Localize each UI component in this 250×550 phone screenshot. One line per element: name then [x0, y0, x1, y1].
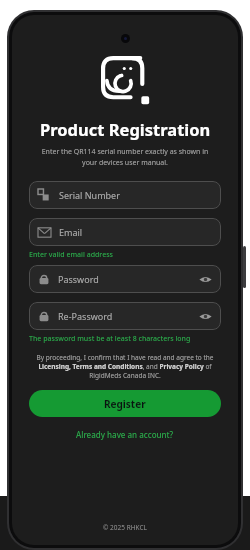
button[interactable]: Serial Number	[29, 181, 221, 209]
staticText: Email	[59, 226, 83, 238]
button[interactable]: Re-Password	[29, 302, 221, 330]
button[interactable]: Password	[29, 265, 221, 293]
button[interactable]: Email	[29, 218, 221, 246]
staticText: Enter valid email address	[29, 250, 113, 260]
staticText: Product Registration	[40, 118, 211, 140]
staticText: The password must be at least 8 characte…	[29, 334, 191, 344]
other: Toggle password visibility	[199, 273, 212, 286]
staticText: By proceeding, I confirm that I have rea…	[33, 353, 217, 380]
staticText: Password	[58, 273, 99, 285]
other: Toggle password visibility	[199, 310, 212, 323]
staticText: © 2025 RHKCL	[103, 523, 147, 532]
staticText: Enter the QR114 serial number exactly as…	[37, 147, 213, 167]
button[interactable]: Already have an account?	[68, 425, 182, 444]
staticText: Serial Number	[59, 189, 120, 201]
staticText: Already have an account?	[76, 429, 174, 440]
staticText: Register	[104, 397, 146, 411]
other: App logo	[101, 56, 150, 105]
staticText: Re-Password	[58, 310, 113, 322]
button[interactable]: Register	[29, 390, 221, 417]
